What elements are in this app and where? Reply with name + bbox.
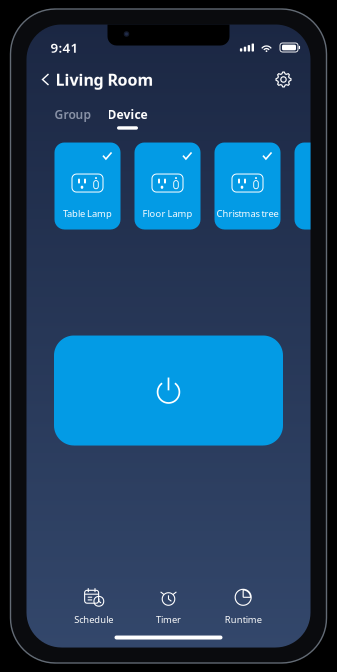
staticText: Group (54, 106, 91, 122)
button[interactable]: Group (54, 106, 91, 130)
button[interactable]: Table Lamp (54, 142, 120, 229)
staticText: Living Room (55, 69, 153, 90)
button[interactable]: Schedule (56, 582, 131, 631)
button[interactable]: Christmas tree (214, 142, 280, 229)
staticText: 9:41 (50, 39, 78, 56)
button[interactable]: Power (54, 335, 283, 445)
staticText: Floor Lamp (142, 207, 192, 219)
button[interactable]: Sm (294, 142, 337, 229)
button[interactable]: Timer (131, 582, 206, 631)
staticText: Table Lamp (63, 207, 112, 219)
staticText: Schedule (74, 613, 113, 626)
staticText: Timer (156, 613, 181, 626)
button[interactable]: Floor Lamp (134, 142, 200, 229)
staticText: Christmas tree (216, 207, 278, 219)
button[interactable]: Settings (269, 65, 297, 93)
button[interactable]: Living Room (42, 64, 153, 95)
staticText: Runtime (225, 613, 262, 626)
button[interactable]: Runtime (206, 582, 280, 631)
staticText: Device (107, 106, 147, 122)
staticText: Sm (320, 207, 334, 219)
button[interactable]: Device (107, 106, 147, 130)
